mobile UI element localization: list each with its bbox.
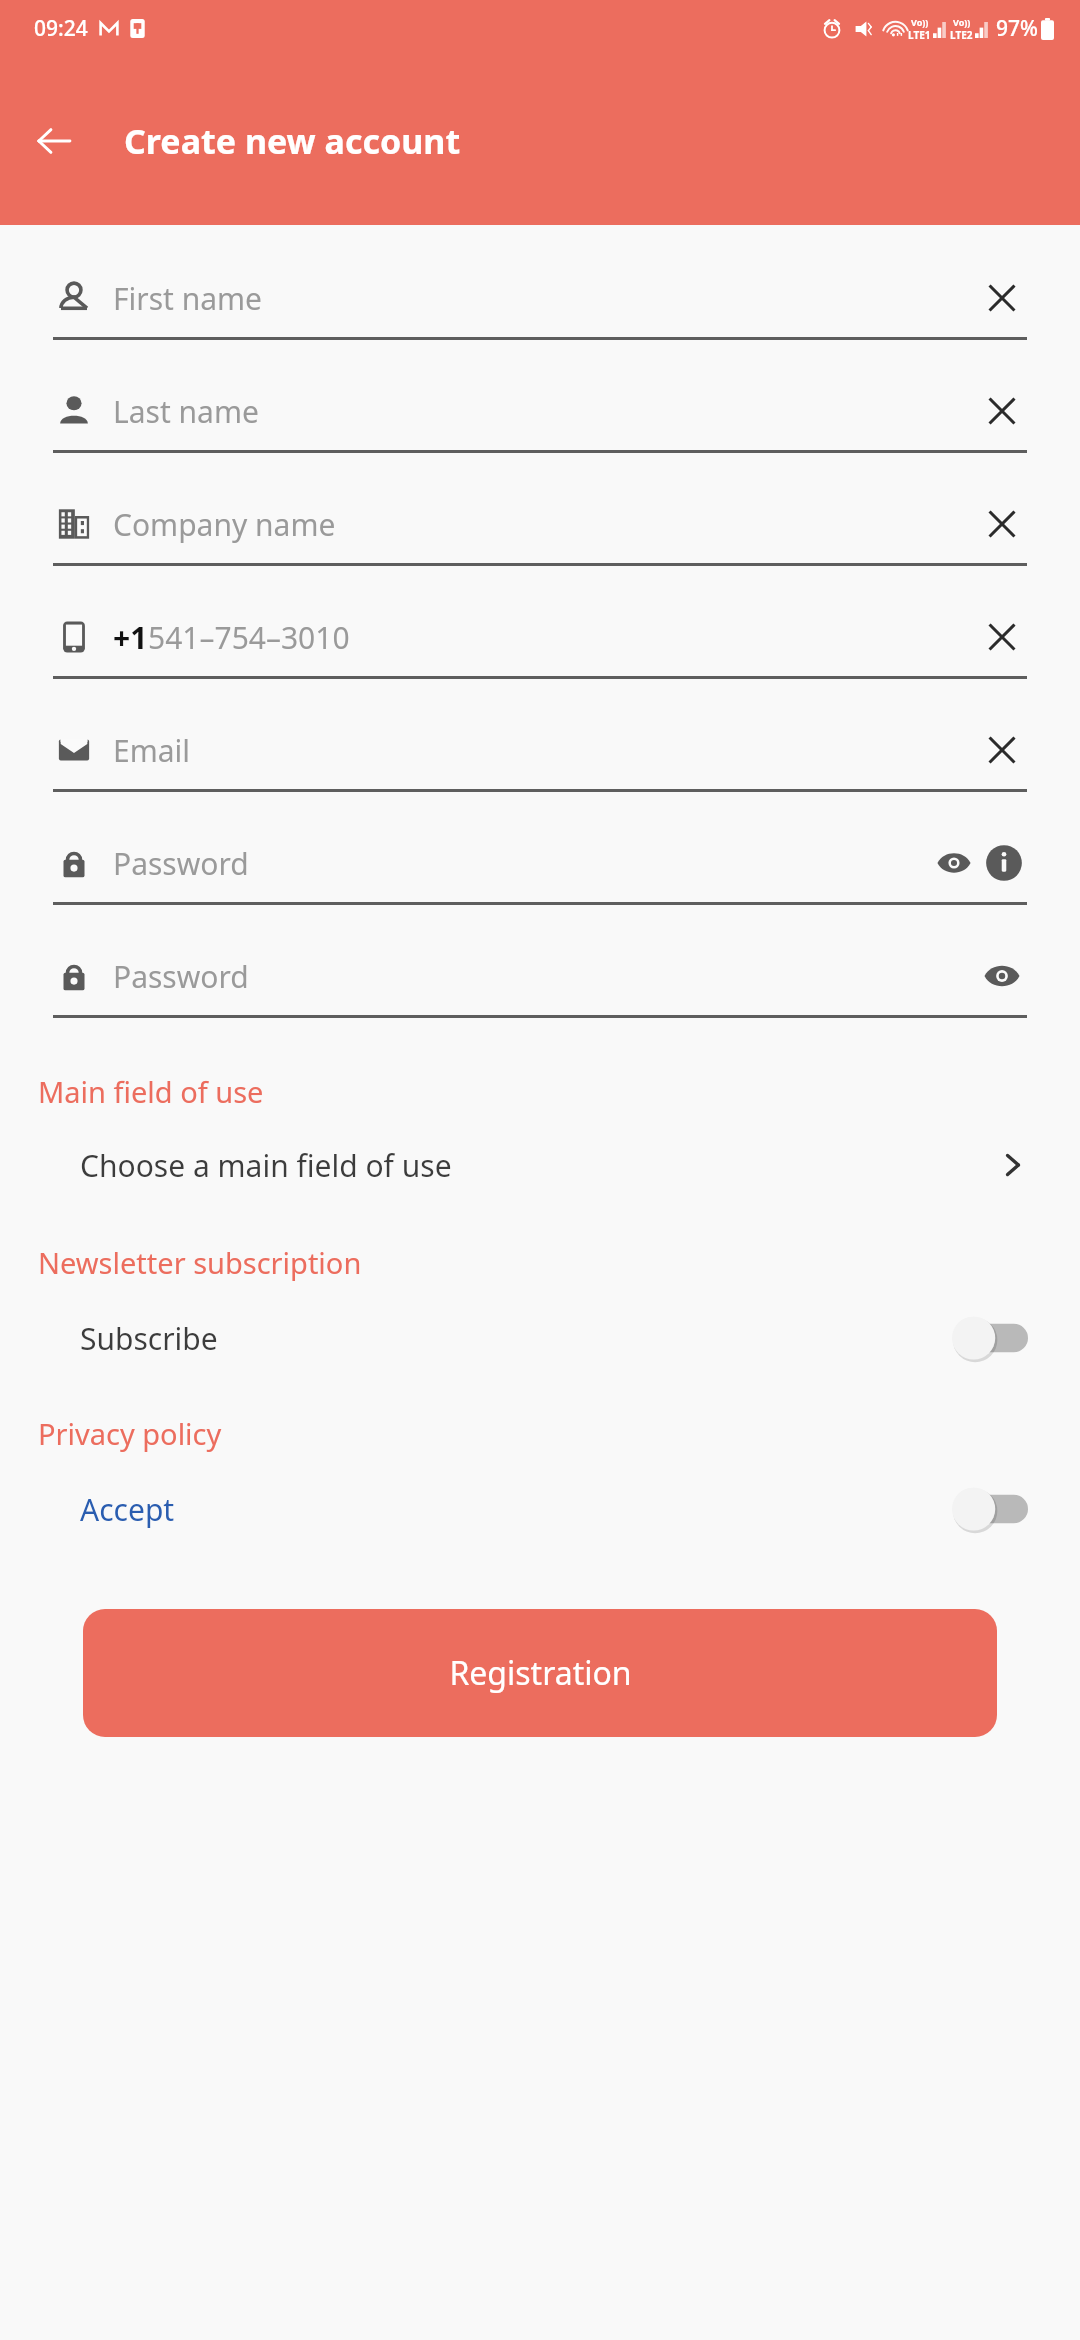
button[interactable]: Clear First name (977, 273, 1027, 323)
button[interactable]: Registration (83, 1609, 997, 1737)
staticText: Last name (113, 391, 977, 432)
button[interactable]: Clear phone (977, 612, 1027, 662)
staticText: 09:24 (34, 14, 88, 43)
staticText: Password (113, 843, 931, 884)
staticText: LTE1 (908, 28, 931, 42)
staticText: 97% (996, 14, 1038, 43)
button[interactable]: Company name (53, 485, 1027, 598)
staticText: Newsletter subscription (38, 1243, 362, 1282)
button[interactable]: Last name (53, 372, 1027, 485)
button[interactable]: Email (53, 711, 1027, 824)
staticText: Email (113, 730, 977, 771)
staticText: Password (113, 956, 977, 997)
button[interactable]: Subscribe (0, 1290, 1080, 1386)
staticText: Create new account (124, 118, 461, 164)
button[interactable]: Show password (977, 951, 1027, 1001)
button[interactable]: +1 (53, 598, 1027, 711)
staticText: Vo)) (953, 16, 971, 28)
button[interactable]: Clear Last name (977, 386, 1027, 436)
staticText: 541–754–3010 (148, 617, 977, 658)
staticText: Accept (80, 1489, 952, 1530)
staticText: Privacy policy (38, 1414, 222, 1453)
staticText: Choose a main field of use (80, 1145, 996, 1186)
button[interactable]: First name (53, 259, 1027, 372)
button[interactable]: Password (53, 824, 1027, 937)
button[interactable]: Clear Email (977, 725, 1027, 775)
staticText: Registration (449, 1651, 632, 1695)
staticText: Company name (113, 504, 977, 545)
button[interactable]: Accept (0, 1461, 1080, 1557)
staticText: Subscribe (80, 1318, 952, 1359)
button[interactable]: Clear Company name (977, 499, 1027, 549)
button[interactable]: Choose a main field of use (0, 1119, 1080, 1211)
button[interactable]: Back (18, 105, 90, 177)
staticText: Main field of use (38, 1072, 264, 1111)
staticText: +1 (113, 617, 148, 658)
button[interactable]: Password (53, 937, 1027, 1050)
button[interactable]: Password info (981, 840, 1027, 886)
button[interactable]: Show password (931, 840, 977, 886)
staticText: Vo)) (911, 16, 929, 28)
staticText: First name (113, 278, 977, 319)
staticText: LTE2 (950, 28, 973, 42)
